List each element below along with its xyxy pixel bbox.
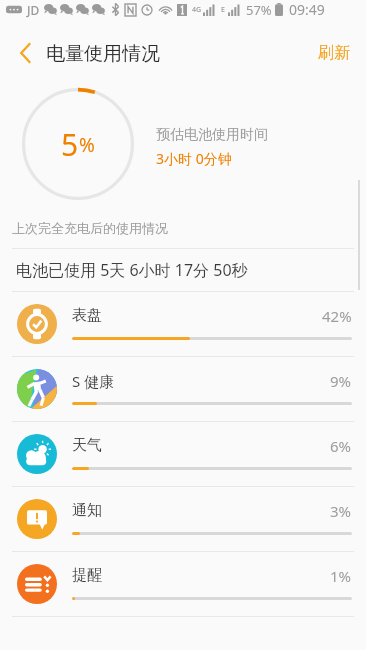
button[interactable]: 表盘: [0, 292, 366, 356]
staticText: S 健康: [72, 371, 115, 391]
staticText: 3%: [330, 501, 352, 521]
staticText: 表盘: [72, 306, 102, 325]
staticText: 上次完全充电后的使用情况: [12, 220, 168, 236]
button[interactable]: 通知: [0, 487, 366, 551]
staticText: 57%: [246, 1, 272, 19]
button[interactable]: Back: [6, 33, 46, 73]
staticText: 4G: [192, 5, 202, 15]
staticText: 9%: [330, 371, 352, 391]
staticText: JD: [27, 2, 40, 18]
button[interactable]: 提醒: [0, 552, 366, 616]
staticText: 5: [61, 124, 79, 165]
staticText: 42%: [322, 306, 352, 326]
staticText: 6%: [330, 436, 352, 456]
staticText: 刷新: [318, 43, 350, 63]
staticText: 09:49: [289, 0, 325, 19]
staticText: 通知: [72, 501, 102, 520]
staticText: 提醒: [72, 566, 102, 585]
button[interactable]: 刷新: [312, 35, 356, 71]
staticText: %: [79, 132, 95, 158]
staticText: 1%: [330, 566, 352, 586]
staticText: 电池已使用 5天 6小时 17分 50秒: [16, 259, 248, 281]
staticText: E: [221, 5, 225, 15]
staticText: 3小时 0分钟: [156, 149, 232, 168]
staticText: 预估电池使用时间: [156, 126, 268, 144]
button[interactable]: 天气: [0, 422, 366, 486]
button[interactable]: S 健康: [0, 357, 366, 421]
staticText: 天气: [72, 436, 102, 455]
staticText: 电量使用情况: [46, 42, 160, 66]
